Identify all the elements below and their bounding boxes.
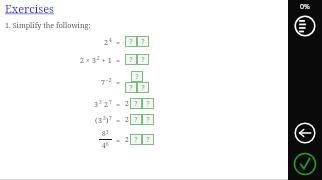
staticText: ? (146, 135, 150, 144)
button[interactable]: ? (125, 36, 137, 47)
staticText: = (116, 37, 121, 47)
staticText: 2 (125, 99, 129, 108)
button[interactable]: ? (137, 82, 149, 93)
button[interactable]: ? (130, 114, 142, 125)
staticText: 2 (104, 99, 109, 109)
staticText: 2 (125, 135, 129, 144)
staticText: 1. Simplify the following: (5, 20, 91, 30)
staticText: ? (141, 83, 145, 92)
staticText: ? (134, 135, 138, 144)
staticText: 2 (125, 115, 129, 124)
button[interactable]: Back (294, 122, 316, 144)
button[interactable]: ? (130, 134, 142, 145)
staticText: ? (141, 37, 145, 46)
staticText: + 1 (100, 55, 112, 65)
staticText: 3 (98, 115, 103, 125)
staticText: 2 (80, 55, 86, 65)
staticText: ? (135, 72, 139, 81)
button[interactable]: ? (142, 98, 154, 109)
staticText: = (116, 77, 121, 87)
button[interactable]: Check answers (293, 152, 317, 176)
button[interactable]: 0% (300, 2, 310, 12)
button[interactable]: ? (142, 114, 154, 125)
staticText: 0% (300, 2, 310, 12)
button[interactable]: ? (125, 54, 137, 65)
staticText: 4 (109, 37, 112, 44)
staticText: 3 (94, 99, 99, 109)
button[interactable]: ? (130, 98, 142, 109)
staticText: 6 (106, 141, 109, 147)
staticText: ? (134, 115, 138, 124)
button[interactable]: ? (131, 71, 143, 82)
staticText: ? (129, 37, 133, 46)
staticText: ? (146, 99, 150, 108)
staticText: = (116, 135, 121, 145)
staticText: 7 (101, 77, 106, 87)
button[interactable]: ? (137, 54, 149, 65)
staticText: ? (134, 99, 138, 108)
staticText: ? (146, 115, 150, 124)
staticText: ? (129, 55, 133, 64)
staticText: 3 (103, 115, 106, 122)
staticText: 7 (109, 99, 112, 106)
staticText: 8 (102, 129, 106, 138)
staticText: × (86, 56, 90, 65)
button[interactable]: ? (125, 82, 137, 93)
staticText: ( (95, 115, 98, 125)
staticText: ? (129, 83, 133, 92)
button[interactable]: Menu (294, 15, 316, 37)
staticText: 2 (104, 37, 109, 47)
staticText: 3 (106, 129, 109, 135)
button[interactable]: ? (142, 134, 154, 145)
staticText: −2 (106, 77, 112, 84)
staticText: ) (106, 115, 109, 125)
staticText: 7 (109, 115, 112, 122)
staticText: 2 (97, 55, 100, 62)
staticText: ? (141, 55, 145, 64)
button[interactable]: Exercises (5, 1, 55, 16)
staticText: = (116, 99, 121, 109)
staticText: 3 (92, 55, 97, 65)
staticText: 3 (99, 99, 102, 106)
staticText: = (116, 115, 121, 125)
staticText: = (116, 55, 121, 65)
staticText: 4 (102, 141, 106, 150)
button[interactable]: ? (137, 36, 149, 47)
